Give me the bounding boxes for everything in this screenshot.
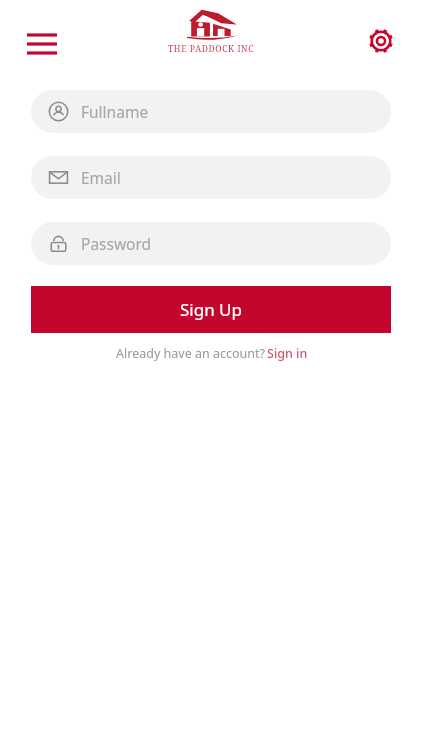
button[interactable]: Email [31, 156, 391, 199]
button[interactable]: Password [31, 222, 391, 265]
button[interactable]: Sign Up [31, 286, 391, 333]
button[interactable]: Settings [354, 14, 408, 68]
staticText: Password [81, 233, 152, 254]
button[interactable]: Sign in [267, 345, 308, 362]
staticText: Email [81, 167, 121, 188]
button[interactable]: Fullname [31, 90, 391, 133]
staticText: Sign in [267, 345, 308, 362]
staticText: Already have an account? [114, 345, 267, 362]
staticText: THE PADDOCK INC [168, 43, 255, 55]
staticText: Sign Up [180, 298, 242, 321]
staticText: Fullname [81, 101, 149, 122]
button[interactable]: Open navigation menu [14, 16, 70, 72]
